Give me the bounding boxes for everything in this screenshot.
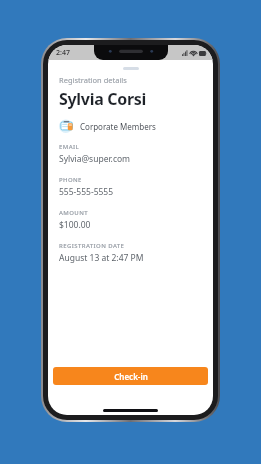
- staticText: August 13 at 2:47 PM: [59, 252, 144, 264]
- staticText: EMAIL: [59, 143, 80, 151]
- staticText: Sylvia@super.com: [59, 153, 131, 165]
- staticText: PHONE: [59, 176, 82, 184]
- staticText: Registration details: [59, 75, 127, 85]
- staticText: REGISTRATION DATE: [59, 242, 125, 250]
- button[interactable]: Check-in: [53, 367, 208, 385]
- staticText: Check-in: [114, 371, 148, 382]
- staticText: $100.00: [59, 219, 91, 231]
- staticText: AMOUNT: [59, 209, 88, 217]
- staticText: 2:47: [56, 48, 70, 58]
- staticText: Sylvia Corsi: [59, 88, 147, 110]
- staticText: Corporate Members: [80, 121, 156, 132]
- staticText: 555-555-5555: [59, 186, 114, 198]
